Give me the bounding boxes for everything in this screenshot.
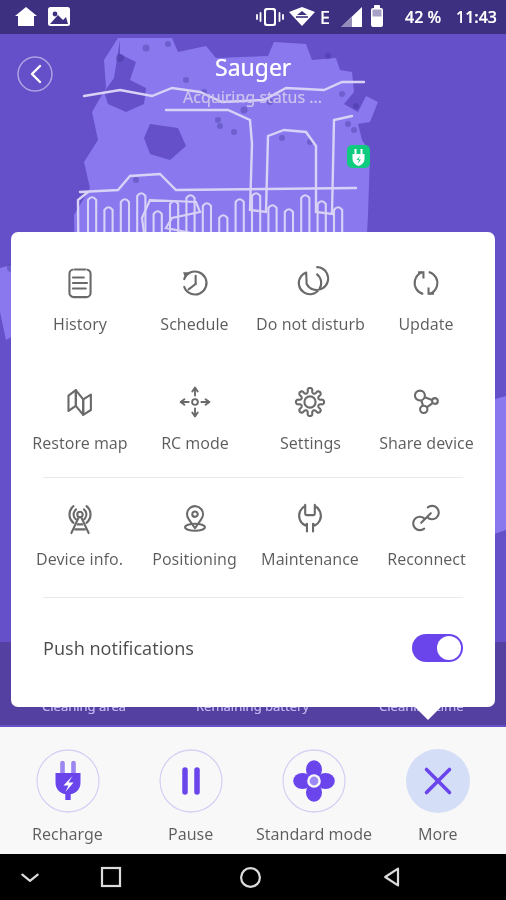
staticText: Positioning <box>152 548 237 570</box>
staticText: Cleaning area <box>42 697 127 715</box>
staticText: Pause <box>168 823 214 845</box>
button[interactable]: Do not disturb <box>252 267 368 335</box>
staticText: Acquiring status ... <box>183 86 323 108</box>
staticText: Cleaning time <box>379 697 464 715</box>
staticText: Restore map <box>32 432 128 454</box>
button[interactable]: Settings <box>252 386 368 454</box>
staticText: Device info. <box>36 548 123 570</box>
button[interactable]: Pause <box>129 727 252 845</box>
button[interactable]: Schedule <box>137 267 252 335</box>
staticText: Recharge <box>32 823 103 845</box>
button[interactable]: History <box>22 267 137 335</box>
staticText: Do not disturb <box>256 313 365 335</box>
button[interactable]: Restore map <box>22 386 137 454</box>
staticText: History <box>53 313 107 335</box>
button[interactable]: Update <box>368 267 484 335</box>
button[interactable]: Back <box>374 859 410 895</box>
staticText: More <box>418 823 458 845</box>
button[interactable]: Push notifications <box>11 598 495 698</box>
button[interactable]: Standard mode <box>252 727 376 845</box>
button[interactable]: More <box>376 727 500 845</box>
button[interactable]: Hide keyboard <box>12 859 48 895</box>
staticText: E <box>320 5 331 30</box>
staticText: Schedule <box>160 313 229 335</box>
staticText: Sauger <box>215 51 292 82</box>
staticText: Push notifications <box>43 636 194 661</box>
staticText: Reconnect <box>387 548 466 570</box>
button[interactable]: Reconnect <box>368 502 484 570</box>
staticText: Maintenance <box>261 548 359 570</box>
staticText: Settings <box>280 432 341 454</box>
staticText: Update <box>398 313 454 335</box>
button[interactable]: Recharge <box>6 727 129 845</box>
button[interactable]: Home <box>232 859 268 895</box>
button[interactable]: Push notifications toggle <box>412 634 463 662</box>
staticText: Standard mode <box>256 823 373 845</box>
button[interactable]: Recents <box>93 859 129 895</box>
staticText: Share device <box>379 432 474 454</box>
button[interactable]: Positioning <box>137 502 252 570</box>
button[interactable]: Back <box>17 56 53 92</box>
staticText: 11:43 <box>456 6 497 28</box>
staticText: Remaining battery <box>196 697 310 715</box>
staticText: RC mode <box>161 432 229 454</box>
button[interactable]: Maintenance <box>252 502 368 570</box>
button[interactable]: Device info. <box>22 502 137 570</box>
staticText: 42 % <box>405 6 442 28</box>
button[interactable]: RC mode <box>137 386 252 454</box>
button[interactable]: Share device <box>368 386 484 454</box>
